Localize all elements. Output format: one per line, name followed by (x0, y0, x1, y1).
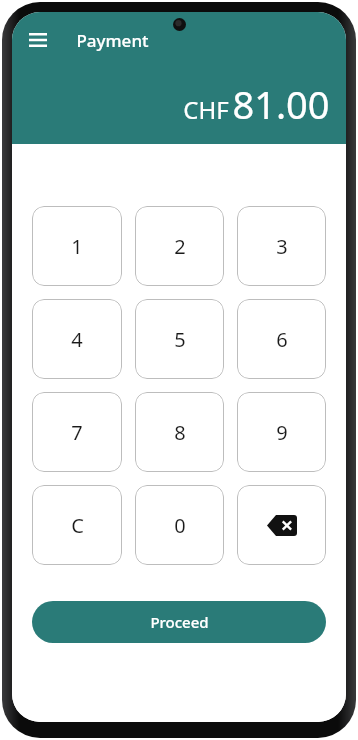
staticText: 5 (174, 326, 186, 353)
staticText: 7 (71, 419, 83, 446)
staticText: 8 (174, 419, 186, 446)
button[interactable]: 7 (32, 392, 122, 472)
button[interactable]: Open navigation menu (18, 20, 58, 60)
staticText: 4 (71, 326, 83, 353)
staticText: Proceed (150, 612, 209, 632)
button[interactable]: 9 (237, 392, 326, 472)
staticText: C (71, 512, 84, 539)
staticText: 1 (71, 233, 83, 260)
button[interactable]: 8 (135, 392, 224, 472)
button[interactable]: 4 (32, 299, 122, 379)
staticText: 81.00 (232, 78, 330, 130)
button[interactable]: 5 (135, 299, 224, 379)
button[interactable]: Proceed (32, 601, 326, 643)
staticText: Payment (76, 29, 149, 52)
button[interactable]: 6 (237, 299, 326, 379)
button[interactable]: Backspace (237, 485, 326, 565)
staticText: 0 (174, 512, 186, 539)
button[interactable]: 0 (135, 485, 224, 565)
staticText: 3 (276, 233, 288, 260)
button[interactable]: 2 (135, 206, 224, 286)
staticText: 2 (174, 233, 186, 260)
staticText: 6 (276, 326, 288, 353)
button[interactable]: 3 (237, 206, 326, 286)
staticText: CHF (183, 93, 229, 126)
staticText: 9 (276, 419, 288, 446)
button[interactable]: 1 (32, 206, 122, 286)
button[interactable]: C (32, 485, 122, 565)
